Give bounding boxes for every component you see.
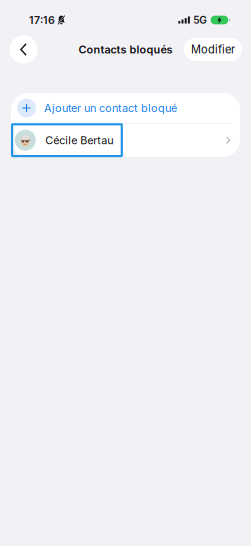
button[interactable]: Retour [9,35,37,63]
button[interactable]: Cécile Bertau [11,124,240,157]
staticText: 17:16 [29,13,55,26]
staticText: Ajouter un contact bloqué [44,101,177,115]
button[interactable]: Modifier [184,38,242,61]
button[interactable]: Ajouter un contact bloqué [11,93,240,123]
staticText: Cécile Bertau [45,134,113,147]
staticText: 5G [193,14,207,26]
staticText: Contacts bloqués [78,43,172,56]
staticText: Modifier [191,43,235,56]
